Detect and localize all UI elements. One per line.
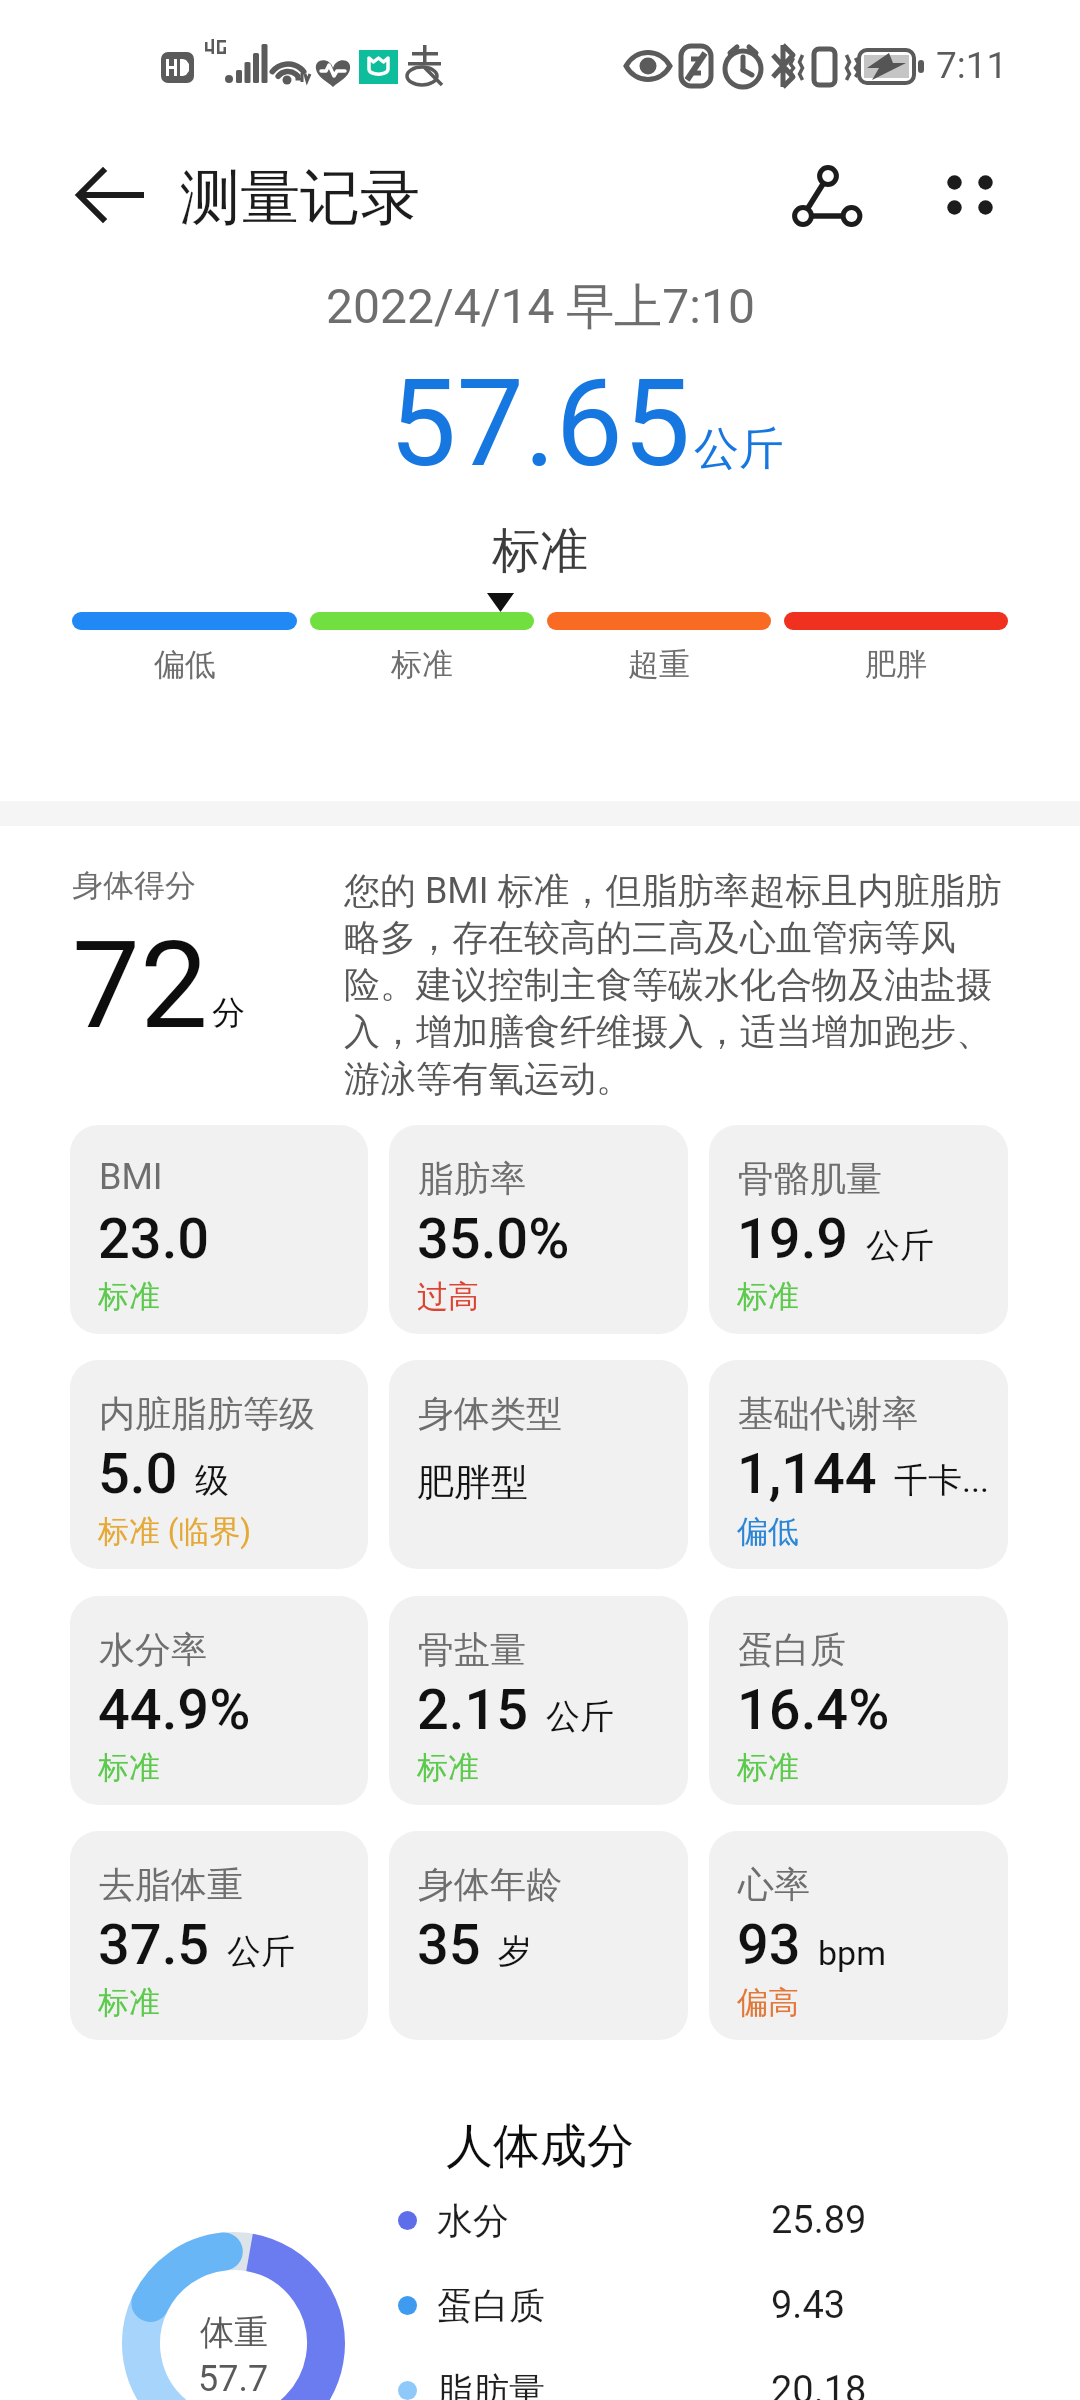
staticText: 您的 BMI 标准，但脂肪率超标且内脏脂肪略多，存在较高的三高及心血管病等风险。… [344,868,1012,1102]
button[interactable]: 身体年龄 [389,1831,688,2040]
staticText: 身体年龄 [418,1862,562,1907]
button[interactable]: 骨盐量 [389,1596,688,1805]
staticText: 标准 [417,1748,479,1787]
button[interactable]: 水分率 [70,1596,368,1805]
staticText: 体重 [200,2311,268,2354]
button[interactable]: Back [60,145,160,245]
button[interactable]: 身体类型 [389,1360,688,1569]
staticText: 57.7 [198,2358,269,2400]
staticText: 公斤 [546,1695,614,1738]
staticText: 偏低 [737,1512,799,1551]
button[interactable]: 水分 [398,2196,878,2244]
staticText: 心率 [738,1862,810,1907]
staticText: 57.65 [389,354,691,495]
staticText: 公斤 [866,1224,934,1267]
staticText: 标准 [98,1277,160,1316]
staticText: 37.5 [98,1912,210,1978]
button[interactable]: More options [920,145,1020,245]
staticText: 标准 (临界) [98,1512,252,1551]
staticText: 偏高 [737,1983,799,2022]
staticText: 脂肪量 [437,2368,545,2400]
staticText: 35.0% [417,1206,570,1272]
staticText: 肥胖型 [417,1459,528,1506]
staticText: 过高 [417,1277,479,1316]
staticText: 骨盐量 [418,1627,526,1672]
staticText: 19.9 [737,1206,849,1272]
staticText: 身体得分 [72,866,196,905]
button[interactable]: 骨骼肌量 [709,1125,1008,1334]
staticText: 公斤 [227,1930,295,1973]
staticText: 偏低 [154,645,216,684]
staticText: 44.9% [98,1677,251,1743]
button[interactable]: 心率 [709,1831,1008,2040]
staticText: 35 [417,1912,481,1978]
staticText: 水分率 [99,1627,207,1672]
staticText: 25.89 [771,2198,867,2243]
staticText: 脂肪率 [418,1156,526,1201]
staticText: 2022/4/14 早上7:10 [326,277,755,337]
staticText: 23.0 [98,1206,210,1272]
button[interactable]: Share [777,146,877,246]
staticText: 20.18 [771,2368,867,2400]
button[interactable]: 内脏脂肪等级 [70,1360,368,1569]
button[interactable]: 脂肪量 [398,2366,878,2400]
staticText: 蛋白质 [437,2283,545,2328]
button[interactable]: 去脂体重 [70,1831,368,2040]
staticText: 9.43 [771,2283,846,2328]
button[interactable]: BMI [70,1125,368,1334]
staticText: 分 [212,992,245,1034]
staticText: 标准 [98,1748,160,1787]
staticText: 1,144 [737,1441,877,1507]
staticText: 标准 [737,1277,799,1316]
staticText: 16.4% [737,1677,890,1743]
staticText: 去脂体重 [99,1862,243,1907]
staticText: 7:11 [936,44,1008,87]
staticText: 标准 [737,1748,799,1787]
staticText: 5.0 [98,1441,178,1507]
staticText: 标准 [98,1983,160,2022]
staticText: 公斤 [694,421,784,478]
staticText: 标准 [391,645,453,684]
staticText: 岁 [498,1930,532,1973]
staticText: 标准 [492,521,588,581]
staticText: 内脏脂肪等级 [99,1391,315,1436]
staticText: 93 [737,1912,801,1978]
button[interactable]: 基础代谢率 [709,1360,1008,1569]
staticText: 蛋白质 [738,1627,846,1672]
staticText: 72 [72,915,209,1057]
staticText: 肥胖 [865,645,927,684]
staticText: 身体类型 [418,1391,562,1436]
staticText: 测量记录 [180,160,420,236]
staticText: BMI [99,1156,163,1198]
staticText: 超重 [628,645,690,684]
staticText: 基础代谢率 [738,1391,918,1436]
staticText: bpm [818,1933,886,1973]
button[interactable]: 脂肪率 [389,1125,688,1334]
button[interactable]: 蛋白质 [709,1596,1008,1805]
staticText: 2.15 [417,1677,529,1743]
staticText: 级 [195,1459,229,1502]
button[interactable]: 蛋白质 [398,2281,878,2329]
staticText: 水分 [437,2198,509,2243]
staticText: 千卡... [894,1459,989,1502]
staticText: 骨骼肌量 [738,1156,882,1201]
staticText: 人体成分 [446,2117,634,2176]
